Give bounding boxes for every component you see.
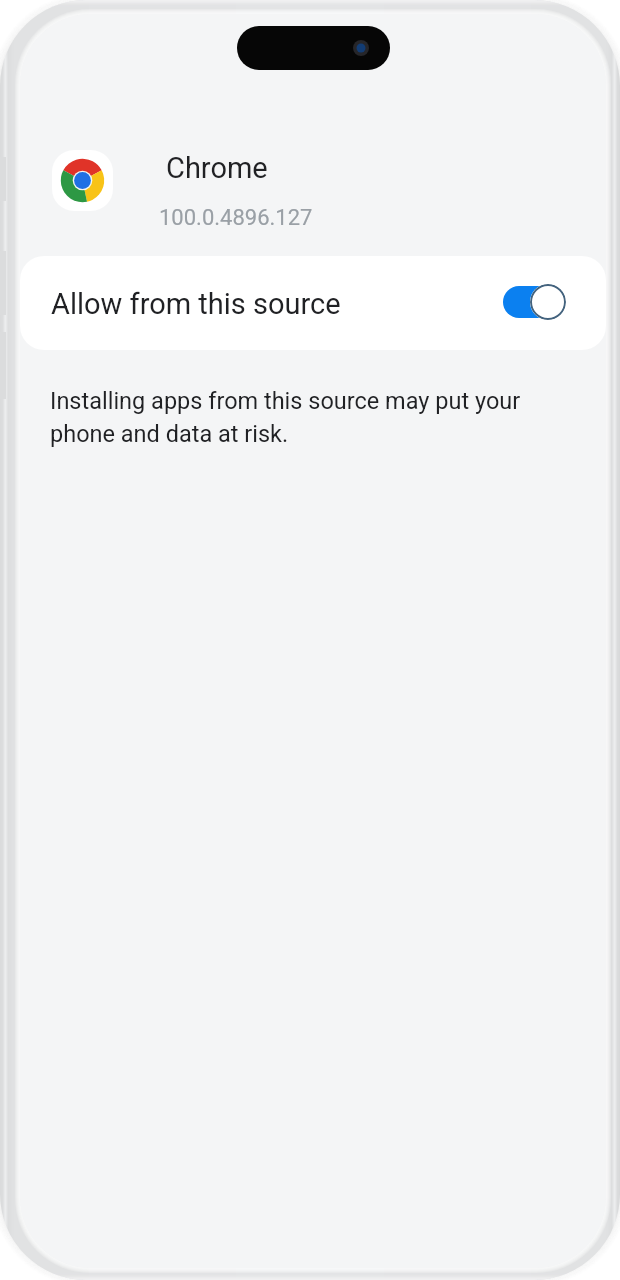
staticText: Installing apps from this source may put… — [50, 387, 540, 448]
staticText: 100.0.4896.127 — [159, 205, 313, 231]
staticText: Chrome — [166, 151, 268, 185]
button[interactable]: Allow from this source — [20, 256, 606, 350]
staticText: Allow from this source — [51, 287, 341, 321]
button[interactable]: Allow from this source — [503, 283, 566, 320]
